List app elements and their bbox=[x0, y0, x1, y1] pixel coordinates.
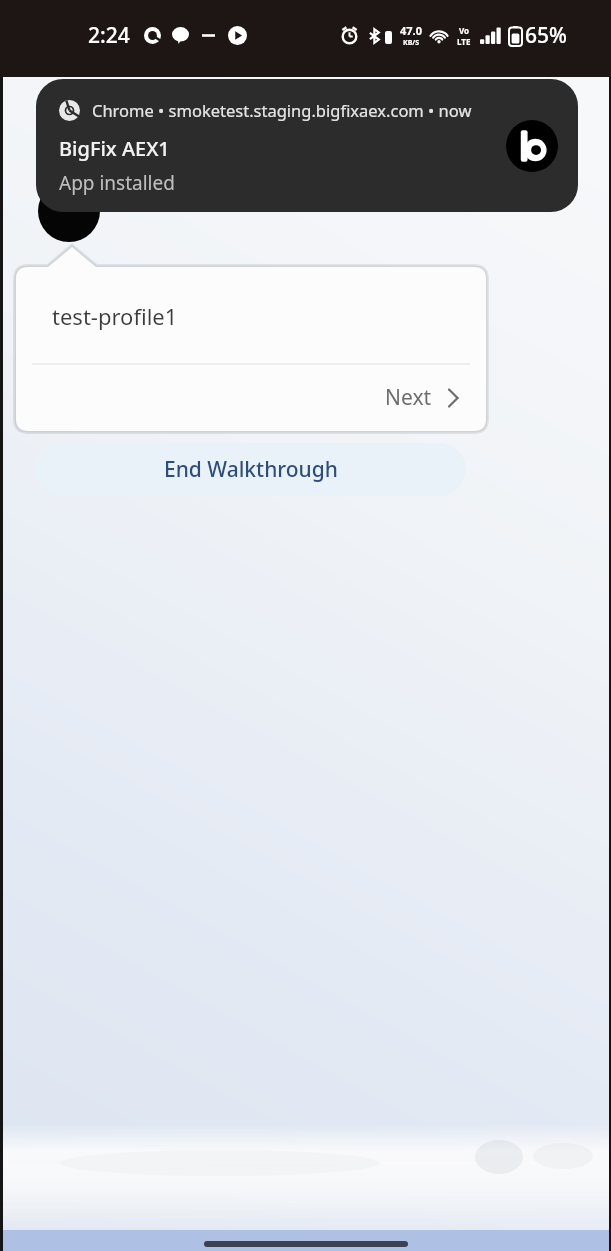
staticText: test-profile1 bbox=[52, 301, 178, 331]
button[interactable]: Next bbox=[16, 364, 486, 431]
button[interactable]: End Walkthrough bbox=[36, 443, 466, 496]
staticText: BigFix AEX1 bbox=[59, 135, 170, 162]
staticText: 2:24 bbox=[88, 21, 130, 50]
staticText: 47.0 bbox=[400, 23, 422, 38]
button[interactable]: test-profile1 bbox=[16, 267, 486, 364]
staticText: Next bbox=[385, 383, 432, 412]
staticText: Vo bbox=[459, 25, 470, 36]
button[interactable]: Chrome • smoketest.staging.bigfixaex.com… bbox=[36, 79, 578, 212]
other: App icon bbox=[506, 120, 558, 172]
staticText: End Walkthrough bbox=[164, 455, 338, 484]
staticText: Chrome • smoketest.staging.bigfixaex.com… bbox=[92, 99, 472, 121]
staticText: App installed bbox=[59, 170, 175, 196]
staticText: 65% bbox=[525, 21, 567, 50]
staticText: LTE bbox=[457, 36, 471, 47]
staticText: KB/S bbox=[403, 38, 420, 48]
